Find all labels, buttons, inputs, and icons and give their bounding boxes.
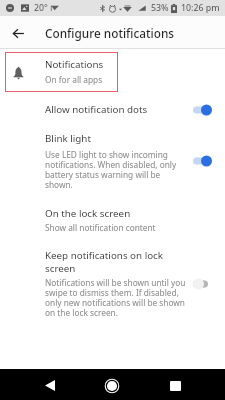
button[interactable]: Back xyxy=(6,20,30,44)
staticText: Configure notifications xyxy=(45,25,175,41)
staticText: Notifications will be shown until you sw… xyxy=(45,278,187,318)
staticText: 53% xyxy=(151,2,169,14)
button[interactable]: Toggle off xyxy=(193,278,212,290)
staticText: 10:26 pm xyxy=(181,2,220,14)
button[interactable]: Back xyxy=(33,369,67,400)
button[interactable]: On the lock screen xyxy=(0,198,225,242)
button[interactable]: Keep notifications on lock screen xyxy=(0,242,225,328)
button[interactable]: Blink light xyxy=(0,124,225,198)
staticText: 20° xyxy=(34,2,48,14)
button[interactable]: Home xyxy=(95,369,129,400)
staticText: On for all apps xyxy=(45,75,103,85)
button[interactable]: Recent apps xyxy=(158,369,192,400)
staticText: Notifications xyxy=(45,58,104,71)
button[interactable]: Toggle on xyxy=(193,155,212,167)
button[interactable]: Allow notification dots xyxy=(0,97,225,124)
staticText: Blink light xyxy=(45,132,91,145)
staticText: Allow notification dots xyxy=(45,103,148,116)
staticText: Use LED light to show incoming notificat… xyxy=(45,150,187,190)
staticText: Keep notifications on lock screen xyxy=(45,249,187,275)
staticText: On the lock screen xyxy=(45,207,131,220)
staticText: Show all notification content xyxy=(45,223,156,233)
button[interactable]: Notifications xyxy=(0,49,225,97)
button[interactable]: Toggle on xyxy=(193,104,212,116)
